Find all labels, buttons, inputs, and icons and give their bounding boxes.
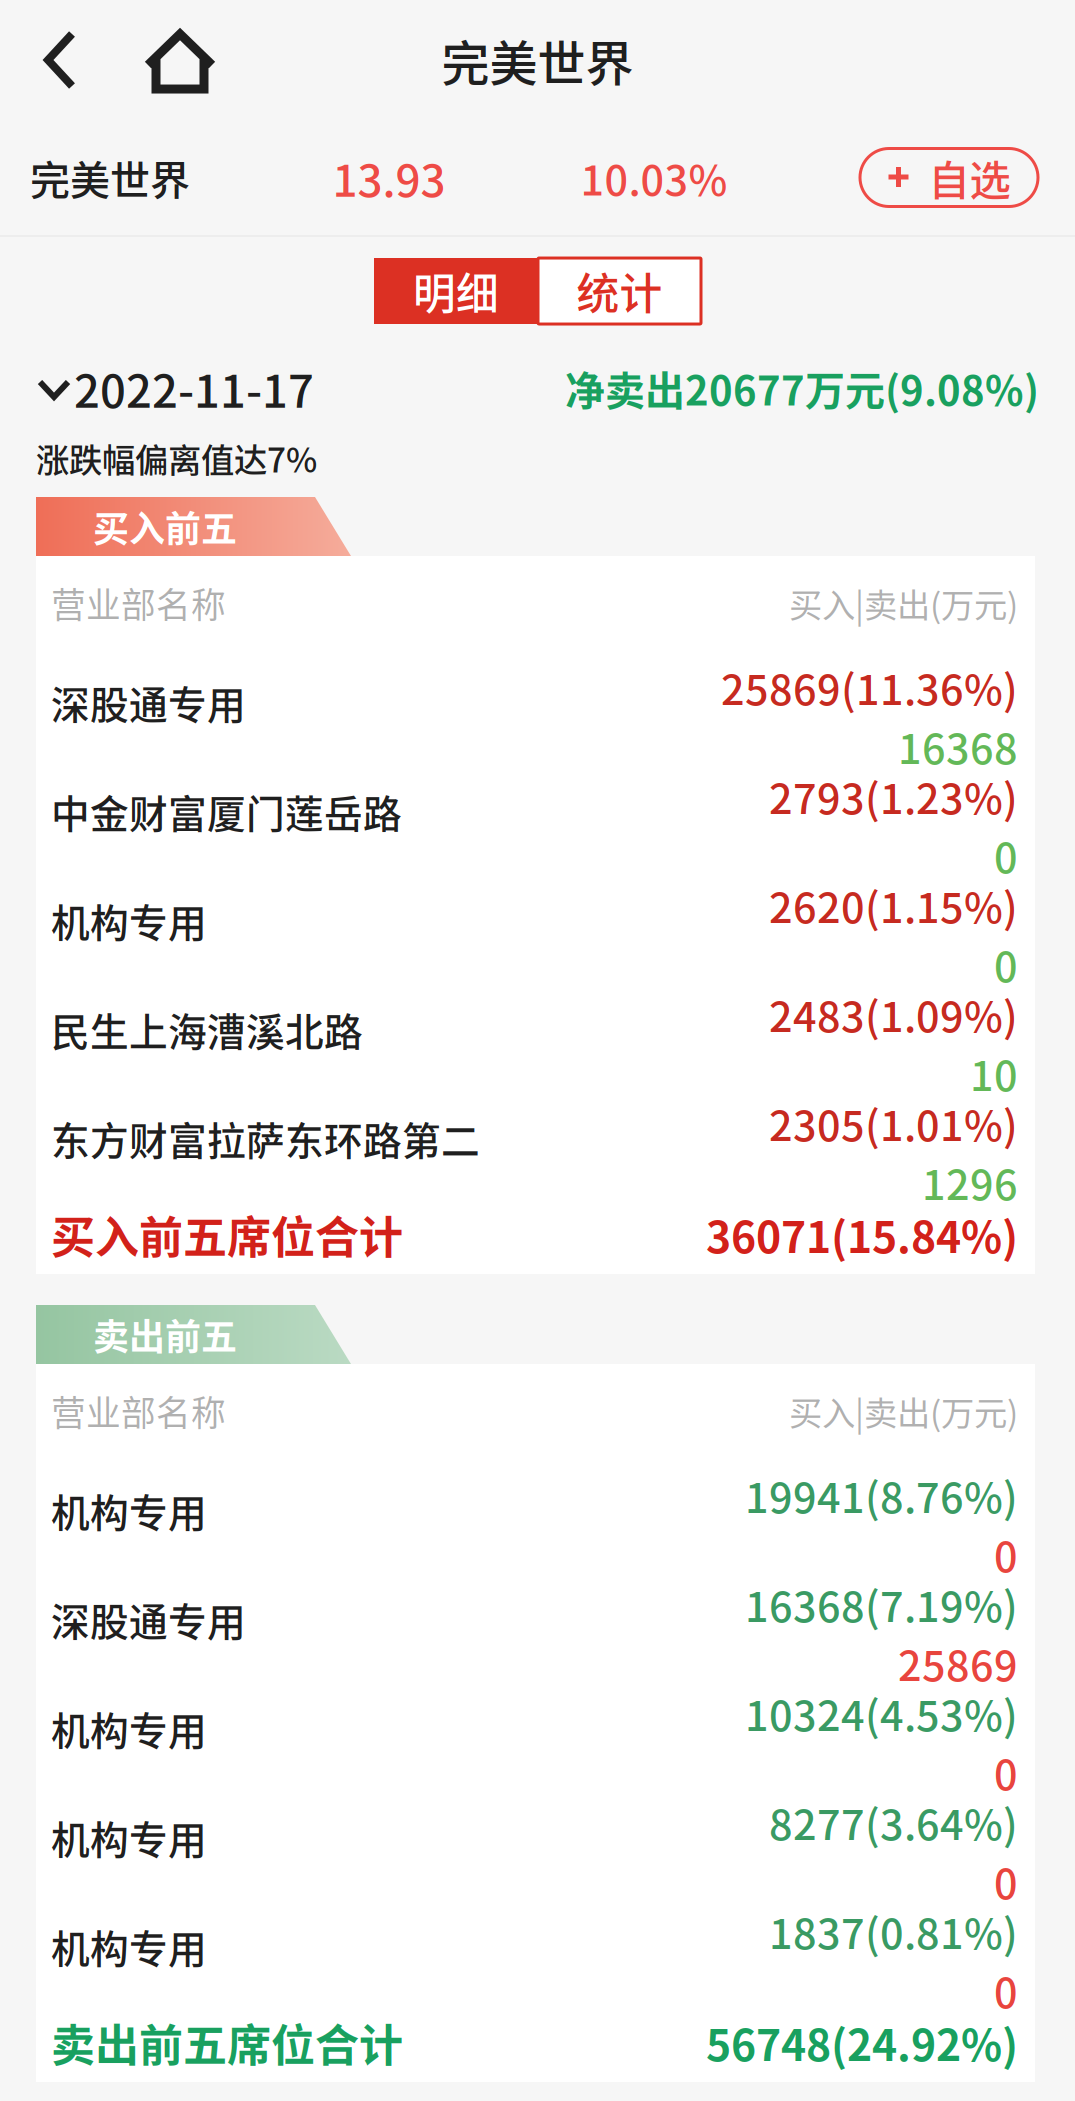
staticText: 2793(1.23%)	[769, 766, 1018, 826]
button[interactable]: 返回	[0, 29, 104, 99]
staticText: 16368	[898, 716, 1018, 776]
staticText: 深股通专用	[51, 674, 246, 730]
staticText: 买入|卖出(万元)	[789, 579, 1018, 627]
staticText: 8277(3.64%)	[769, 1792, 1018, 1852]
button[interactable]: 深股通专用	[36, 650, 1035, 759]
staticText: 1296	[922, 1152, 1018, 1212]
staticText: 19941(8.76%)	[745, 1465, 1018, 1525]
button[interactable]: 统计	[538, 258, 701, 324]
staticText: 深股通专用	[51, 1591, 246, 1647]
button[interactable]: 机构专用	[36, 1785, 1035, 1894]
staticText: 0	[994, 934, 1018, 994]
staticText: 0	[994, 1960, 1018, 2020]
staticText: 0	[994, 825, 1018, 885]
staticText: 56748(24.92%)	[706, 2012, 1018, 2073]
staticText: 机构专用	[51, 1482, 207, 1538]
staticText: 机构专用	[51, 892, 207, 948]
staticText: 2483(1.09%)	[769, 984, 1018, 1044]
button[interactable]: 机构专用	[36, 868, 1035, 977]
staticText: 10.03%	[580, 148, 727, 207]
staticText: 净卖出20677万元(9.08%)	[565, 359, 1039, 417]
staticText: 2022-11-17	[74, 355, 314, 421]
staticText: 13.93	[332, 146, 445, 209]
button[interactable]: 民生上海漕溪北路	[36, 977, 1035, 1086]
staticText: 卖出前五席位合计	[51, 2011, 403, 2074]
staticText: 民生上海漕溪北路	[51, 1001, 363, 1057]
staticText: 买入前五席位合计	[51, 1203, 403, 1266]
staticText: 买入前五	[93, 500, 237, 552]
staticText: 机构专用	[51, 1700, 207, 1756]
button[interactable]: 机构专用	[36, 1458, 1035, 1567]
staticText: 卖出前五	[93, 1308, 237, 1360]
staticText: 机构专用	[51, 1809, 207, 1865]
button[interactable]: 中金财富厦门莲岳路	[36, 759, 1035, 868]
staticText: 0	[994, 1524, 1018, 1584]
staticText: 明细	[413, 260, 499, 322]
staticText: 16368(7.19%)	[745, 1574, 1018, 1634]
staticText: 2620(1.15%)	[769, 875, 1018, 935]
button[interactable]: 首页	[104, 29, 240, 99]
staticText: 营业部名称	[51, 578, 226, 628]
staticText: 统计	[576, 260, 662, 322]
staticText: 10324(4.53%)	[745, 1683, 1018, 1743]
staticText: 完美世界	[441, 25, 633, 95]
staticText: 买入|卖出(万元)	[789, 1387, 1018, 1435]
staticText: 中金财富厦门莲岳路	[51, 783, 402, 839]
button[interactable]: 明细	[374, 258, 538, 324]
staticText: 36071(15.84%)	[706, 1204, 1018, 1265]
staticText: 0	[994, 1742, 1018, 1802]
staticText: 涨跌幅偏离值达7%	[36, 434, 317, 482]
staticText: 25869	[898, 1633, 1018, 1693]
staticText: 营业部名称	[51, 1386, 226, 1436]
staticText: 完美世界	[30, 148, 190, 206]
button[interactable]: 深股通专用	[36, 1567, 1035, 1676]
button[interactable]: 自选	[860, 148, 1038, 206]
staticText: 自选	[928, 148, 1010, 207]
button[interactable]: 2022-11-17	[36, 355, 314, 421]
button[interactable]: 机构专用	[36, 1676, 1035, 1785]
staticText: 1837(0.81%)	[769, 1901, 1018, 1961]
staticText: 25869(11.36%)	[721, 657, 1018, 717]
button[interactable]: 机构专用	[36, 1894, 1035, 2003]
staticText: 10	[970, 1043, 1018, 1103]
button[interactable]: 东方财富拉萨东环路第二	[36, 1086, 1035, 1195]
staticText: 2305(1.01%)	[769, 1093, 1018, 1153]
staticText: 0	[994, 1851, 1018, 1911]
staticText: 东方财富拉萨东环路第二	[51, 1110, 480, 1166]
staticText: 机构专用	[51, 1918, 207, 1974]
